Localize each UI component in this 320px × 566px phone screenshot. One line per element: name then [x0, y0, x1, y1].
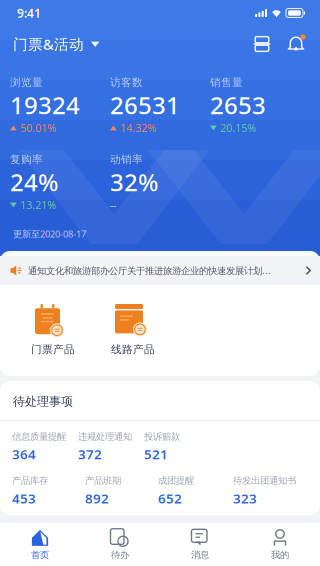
button[interactable]: 线路产品: [93, 304, 173, 356]
staticText: 364: [12, 445, 36, 463]
staticText: 线路产品: [111, 343, 155, 356]
staticText: 待处理事项: [13, 394, 73, 409]
staticText: 通知文化和旅游部办公厅关于推进旅游企业的快速发展计划...: [28, 264, 271, 277]
button[interactable]: 通知文化和旅游部办公厅关于推进旅游企业的快速发展计划...: [0, 256, 320, 285]
button[interactable]: 首页: [0, 523, 80, 566]
staticText: 首页: [31, 549, 49, 561]
staticText: 14.32%: [120, 121, 156, 135]
button[interactable]: 违规处理通知: [78, 431, 144, 463]
staticText: 我的: [271, 549, 289, 561]
button[interactable]: 产品库存: [12, 475, 85, 507]
staticText: 892: [85, 489, 109, 507]
staticText: 13.21%: [20, 198, 56, 212]
staticText: 访客数: [110, 76, 143, 89]
staticText: 19324: [10, 89, 80, 121]
staticText: 销售量: [210, 76, 243, 89]
staticText: --: [110, 198, 116, 212]
button[interactable]: 信息质量提醒: [12, 431, 78, 463]
staticText: 投诉赔款: [144, 431, 180, 442]
staticText: 2653: [210, 89, 266, 121]
button[interactable]: 产品班期: [85, 475, 158, 507]
staticText: 门票&活动: [13, 34, 84, 54]
button[interactable]: Notifications: [279, 26, 313, 62]
button[interactable]: 门票&活动: [0, 26, 109, 62]
button[interactable]: 我的: [240, 523, 320, 566]
staticText: 32%: [110, 166, 158, 198]
staticText: 违规处理通知: [78, 431, 132, 442]
staticText: 372: [78, 445, 102, 463]
button[interactable]: 待办: [80, 523, 160, 566]
staticText: 待发出团通知书: [233, 475, 296, 486]
staticText: 652: [158, 489, 182, 507]
staticText: 453: [12, 489, 36, 507]
button[interactable]: Switch layout: [245, 26, 279, 62]
staticText: 成团提醒: [158, 475, 194, 486]
staticText: 产品库存: [12, 475, 48, 486]
staticText: 521: [144, 445, 168, 463]
staticText: 9:41: [17, 5, 41, 21]
staticText: 26531: [110, 89, 180, 121]
staticText: 消息: [191, 549, 209, 561]
staticText: 信息质量提醒: [12, 431, 66, 442]
staticText: 复购率: [10, 153, 43, 166]
staticText: 更新至2020-08-17: [13, 228, 86, 240]
staticText: 50.01%: [20, 121, 56, 135]
button[interactable]: 投诉赔款: [144, 431, 210, 463]
staticText: 产品班期: [85, 475, 121, 486]
staticText: 门票产品: [31, 343, 75, 356]
staticText: 动销率: [110, 153, 143, 166]
button[interactable]: 门票产品: [13, 304, 93, 356]
button[interactable]: 消息: [160, 523, 240, 566]
staticText: 待办: [111, 549, 129, 561]
staticText: 24%: [10, 166, 58, 198]
button[interactable]: 待发出团通知书: [233, 475, 308, 507]
staticText: 323: [233, 489, 257, 507]
staticText: 20.15%: [220, 121, 256, 135]
button[interactable]: 成团提醒: [158, 475, 233, 507]
staticText: 浏览量: [10, 76, 43, 89]
